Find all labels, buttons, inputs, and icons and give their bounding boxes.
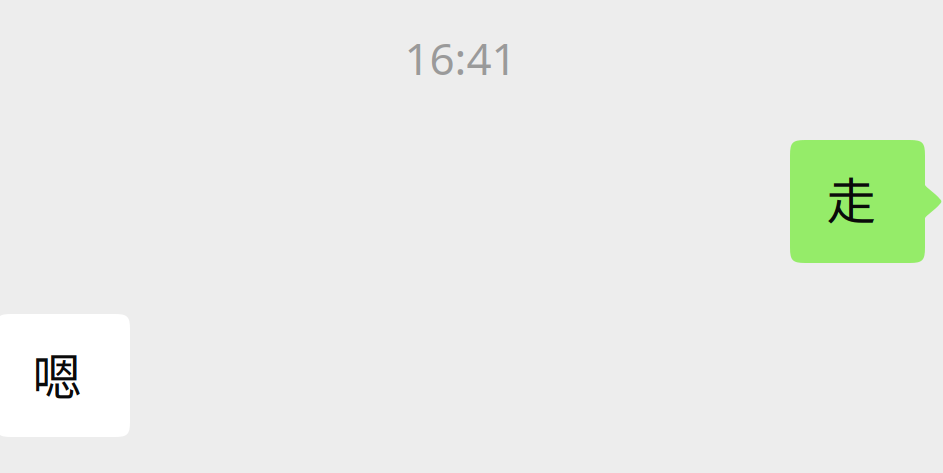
- button[interactable]: 嗯: [0, 314, 130, 437]
- staticText: 嗯: [32, 338, 81, 409]
- staticText: 16:41: [404, 29, 516, 87]
- staticText: 走: [826, 161, 875, 233]
- button[interactable]: 走: [790, 140, 942, 263]
